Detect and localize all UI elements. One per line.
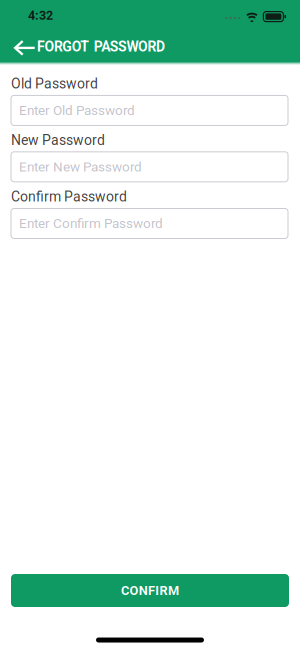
staticText: Enter New Password (19, 159, 142, 175)
staticText: Old Password (11, 75, 98, 92)
button[interactable]: Enter Old Password (11, 95, 288, 125)
staticText: 4:32 (28, 8, 53, 23)
staticText: Enter Old Password (19, 102, 135, 118)
button[interactable]: Enter Confirm Password (11, 208, 288, 238)
staticText: Enter Confirm Password (19, 216, 163, 231)
staticText: CONFIRM (121, 583, 179, 598)
button[interactable]: Back (13, 40, 35, 56)
button[interactable]: CONFIRM (11, 574, 289, 607)
staticText: Confirm Password (11, 189, 127, 205)
staticText: PASSWORD (94, 38, 165, 55)
staticText: FORGOT (37, 38, 89, 55)
button[interactable]: Enter New Password (11, 152, 288, 182)
staticText: New Password (11, 132, 105, 148)
